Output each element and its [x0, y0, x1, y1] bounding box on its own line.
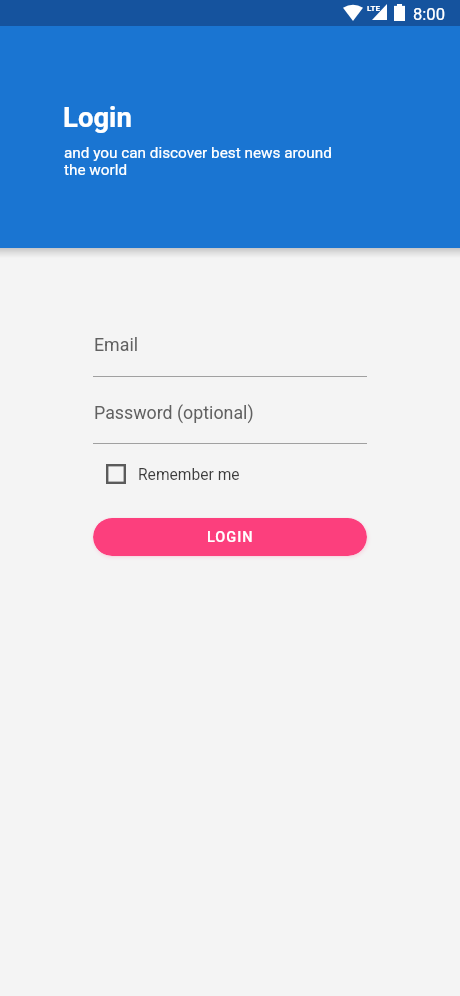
- other: Battery: [394, 4, 405, 21]
- staticText: Login: [63, 101, 132, 133]
- button[interactable]: Email: [93, 330, 367, 377]
- staticText: Password (optional): [94, 402, 254, 423]
- button[interactable]: LOGIN: [93, 518, 367, 556]
- staticText: 8:00: [413, 5, 445, 24]
- other: Mobile signal: [372, 4, 387, 20]
- staticText: LOGIN: [207, 529, 254, 546]
- staticText: and you can discover best news around th…: [64, 144, 332, 179]
- staticText: Email: [94, 334, 139, 355]
- staticText: Remember me: [138, 466, 240, 484]
- other: Wi-Fi signal: [343, 4, 363, 21]
- button[interactable]: Password (optional): [93, 399, 367, 444]
- staticText: LTE: [367, 4, 380, 13]
- button[interactable]: Remember me: [93, 455, 367, 493]
